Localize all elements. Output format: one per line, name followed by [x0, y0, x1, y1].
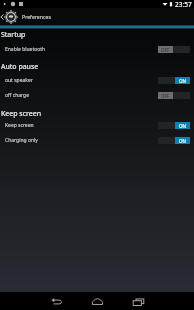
button[interactable]: Navigate up: [0, 10, 18, 24]
button[interactable]: Home: [77, 293, 118, 310]
button[interactable]: Charging only: [0, 133, 194, 148]
staticText: Preferences: [22, 13, 51, 20]
staticText: Auto pause: [1, 62, 39, 72]
staticText: ON: [179, 138, 187, 144]
button[interactable]: Back: [36, 293, 77, 310]
staticText: ON: [179, 78, 187, 84]
staticText: 23:57: [175, 0, 192, 8]
staticText: ON: [179, 123, 187, 129]
button[interactable]: off charge: [0, 88, 194, 103]
staticText: Startup: [1, 30, 26, 40]
staticText: out speaker: [5, 77, 33, 84]
button[interactable]: Recent apps: [118, 293, 159, 310]
staticText: Keep screen: [5, 122, 34, 129]
staticText: Enable bluetooth: [5, 46, 46, 53]
staticText: off charge: [5, 92, 29, 99]
staticText: Charging only: [5, 137, 38, 144]
button[interactable]: Keep screen: [0, 118, 194, 133]
button[interactable]: Enable bluetooth: [0, 42, 194, 57]
staticText: OFF: [161, 93, 170, 99]
staticText: OFF: [161, 47, 170, 53]
button[interactable]: out speaker: [0, 73, 194, 88]
staticText: Keep screen: [1, 109, 42, 119]
